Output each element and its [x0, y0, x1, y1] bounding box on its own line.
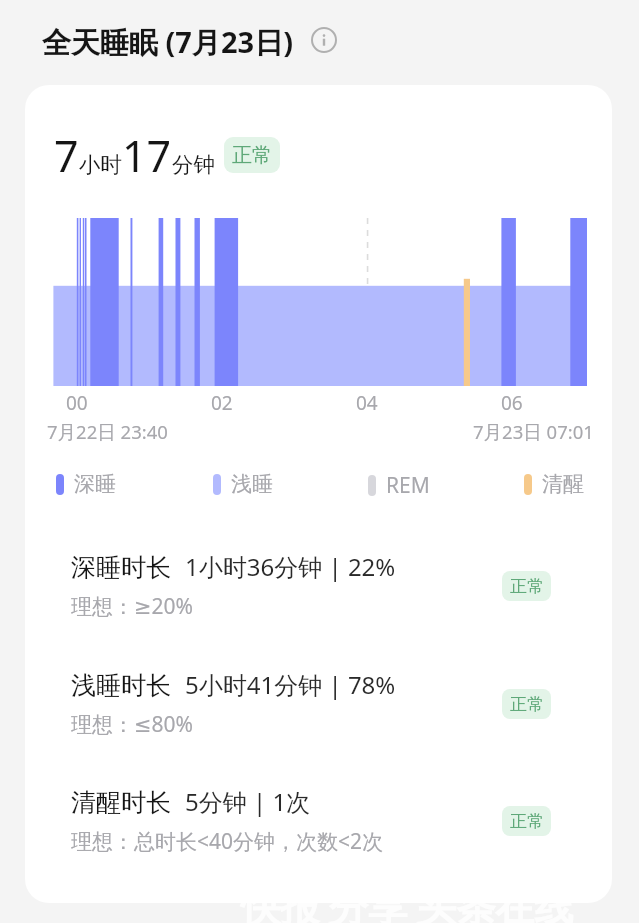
staticText: 正常 [510, 811, 544, 832]
staticText: REM [386, 471, 430, 500]
button[interactable]: 浅睡时长 [25, 668, 612, 739]
staticText: 快报 分享 头条在线 [241, 879, 574, 923]
staticText: 7月22日 23:40 [47, 419, 168, 444]
staticText: 深睡时长 [71, 552, 171, 583]
button[interactable]: 正常 [502, 806, 551, 836]
button[interactable]: 浅睡 [213, 471, 273, 497]
staticText: 04 [356, 390, 378, 416]
staticText: 00 [66, 390, 88, 416]
button[interactable]: 正常 [502, 571, 551, 601]
button[interactable]: 清醒时长 [25, 785, 612, 856]
button[interactable]: 正常 [224, 137, 280, 173]
staticText: 理想：≤80% [71, 710, 194, 739]
staticText: 7 [54, 126, 79, 185]
staticText: 5分钟 | 1次 [185, 785, 311, 818]
staticText: 17 [122, 126, 172, 185]
staticText: 7月23日 07:01 [473, 419, 594, 444]
staticText: 浅睡 [231, 471, 273, 497]
staticText: 1小时36分钟 | 22% [185, 550, 396, 583]
staticText: 5小时41分钟 | 78% [185, 668, 396, 701]
staticText: 理想：总时长<40分钟，次数<2次 [71, 827, 384, 856]
button[interactable]: 深睡 [56, 471, 116, 497]
button[interactable]: REM [368, 471, 430, 500]
staticText: 正常 [232, 143, 272, 168]
staticText: 小时 [79, 151, 122, 178]
staticText: 清醒 [542, 471, 584, 497]
button[interactable]: Info [311, 27, 337, 53]
button[interactable]: 全天睡眠 (7月23日) [42, 22, 293, 62]
button[interactable]: 正常 [502, 689, 551, 719]
staticText: 浅睡时长 [71, 670, 171, 701]
staticText: 清醒时长 [71, 787, 171, 818]
button[interactable]: 清醒 [524, 471, 584, 497]
staticText: 分钟 [172, 151, 215, 178]
staticText: 正常 [510, 694, 544, 715]
staticText: 正常 [510, 576, 544, 597]
staticText: 02 [211, 390, 233, 416]
button[interactable]: 深睡时长 [25, 550, 612, 621]
staticText: 理想：≥20% [71, 592, 194, 621]
staticText: 06 [501, 390, 523, 416]
staticText: 全天睡眠 (7月23日) [42, 22, 293, 62]
staticText: 深睡 [74, 471, 116, 497]
